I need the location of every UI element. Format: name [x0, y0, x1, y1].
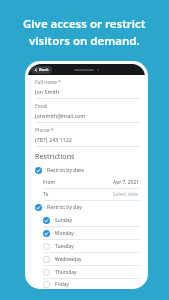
staticText: To	[43, 191, 49, 198]
staticText: Thursday	[55, 269, 77, 276]
staticText: Restrictions	[35, 151, 75, 161]
button[interactable]: Selected	[35, 227, 140, 239]
button[interactable]: Not selected	[35, 240, 140, 252]
button[interactable]: Not selected	[35, 253, 140, 265]
staticText: Friday	[55, 281, 70, 288]
staticText: Phone *	[35, 127, 54, 134]
staticText: Wednesday	[55, 256, 82, 263]
staticText: Tuesday	[55, 243, 74, 250]
button[interactable]: Email	[35, 99, 140, 123]
button[interactable]: Selected	[35, 201, 140, 214]
staticText: Email	[35, 103, 48, 110]
other: Selected	[43, 230, 50, 237]
staticText: Give access or restrict	[23, 16, 146, 32]
other: Not selected	[43, 243, 50, 250]
staticText: From	[43, 179, 55, 186]
button[interactable]: Selected	[35, 164, 140, 177]
staticText: Apr 7, 2021	[113, 179, 139, 186]
button[interactable]: Not selected	[35, 279, 140, 289]
button[interactable]: Back	[31, 66, 52, 74]
other: Not selected	[43, 256, 50, 263]
staticText: Restrict by date	[47, 167, 85, 174]
other: Selected	[35, 204, 42, 211]
staticText: Select date	[113, 191, 139, 198]
staticText: Jon Smith	[35, 88, 60, 95]
button[interactable]: Not selected	[35, 266, 140, 278]
other: Selected	[43, 217, 50, 224]
staticText: Back	[39, 67, 49, 73]
button[interactable]: Selected	[35, 214, 140, 226]
staticText: (787) 243 1122	[35, 136, 72, 143]
staticText: Sunday	[55, 217, 72, 224]
staticText: Full name *	[35, 79, 61, 86]
other: Not selected	[43, 269, 50, 276]
other: Selected	[35, 167, 42, 174]
other: Not selected	[43, 281, 50, 288]
button[interactable]: From	[35, 177, 140, 188]
staticText: Monday	[55, 230, 74, 237]
staticText: Restrict by day	[47, 204, 82, 211]
staticText: visitors on demand.	[29, 33, 140, 49]
button[interactable]: Phone *	[35, 123, 140, 147]
button[interactable]: Full name *	[35, 75, 140, 99]
button[interactable]: To	[35, 189, 140, 200]
staticText: jonsmith@mail.com	[35, 112, 86, 119]
